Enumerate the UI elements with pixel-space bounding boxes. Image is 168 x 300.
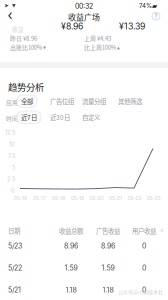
staticText: 昨日 ¥8.96 — [10, 34, 37, 42]
staticText: 应用 — [6, 98, 18, 106]
staticText: 10 — [9, 141, 15, 148]
staticText: 5 — [12, 164, 15, 171]
staticText: 广告位组 — [50, 96, 74, 106]
staticText: 1.59 — [101, 264, 114, 272]
staticText: 用户收益 — [132, 226, 156, 235]
staticText: 05-20 — [89, 195, 103, 201]
staticText: 日期 — [8, 226, 20, 235]
button[interactable]: 全部 — [17, 95, 37, 107]
staticText: 05-17 — [33, 195, 46, 201]
staticText: ▰ — [152, 2, 157, 10]
button[interactable]: 5/21 — [0, 279, 168, 300]
button[interactable]: 流量分组 — [78, 95, 110, 107]
button[interactable]: 其他筛选 — [114, 95, 146, 107]
staticText: 收益广场 — [68, 11, 100, 23]
staticText: 05-16 — [14, 195, 27, 201]
staticText: 收益 — [12, 25, 24, 33]
staticText: 0 — [11, 187, 15, 194]
staticText: 05-23 — [146, 195, 160, 201]
staticText: 0 — [142, 242, 146, 250]
staticText: 近7日 — [21, 112, 37, 122]
staticText: 12.5 — [5, 129, 15, 136]
staticText: 05-19 — [71, 195, 84, 201]
staticText: 近30日 — [50, 112, 70, 122]
staticText: 出账比100% ▾ — [10, 43, 46, 51]
staticText: 时间 — [6, 114, 18, 122]
staticText: 2.5 — [7, 176, 15, 183]
staticText: 上周 ¥4.43 — [84, 34, 111, 42]
staticText: ‹ — [160, 226, 163, 234]
staticText: 8.96 — [64, 242, 78, 250]
staticText: 收益总额 — [59, 226, 83, 235]
staticText: 05-21 — [109, 195, 122, 201]
staticText: ▾ — [12, 1, 16, 9]
staticText: 全部 — [21, 96, 33, 106]
staticText: 7.5 — [8, 153, 15, 159]
staticText: 趋势分析 — [8, 80, 44, 93]
staticText: 1.18 — [65, 286, 76, 294]
button[interactable]: Back — [4, 9, 16, 21]
staticText: 5/21 — [8, 286, 21, 294]
button[interactable]: 近30日 — [46, 111, 74, 123]
staticText: 其他筛选 — [118, 96, 142, 106]
button[interactable]: 广告位组 — [46, 95, 78, 107]
staticText: 74% — [139, 2, 152, 9]
staticText: ¥8.96 — [61, 21, 83, 31]
staticText: 1.18 — [102, 286, 113, 294]
staticText: ¥13.39 — [119, 21, 145, 31]
staticText: ➤ — [4, 2, 9, 9]
staticText: ? — [154, 12, 157, 20]
staticText: 比上周100% ▴ — [84, 43, 120, 51]
button[interactable]: 自定义 — [78, 111, 104, 123]
staticText: 1.59 — [64, 264, 77, 272]
button[interactable]: More columns — [158, 226, 166, 234]
staticText: 自定义 — [82, 112, 100, 122]
staticText: 5/22 — [8, 264, 22, 272]
staticText: 0 — [142, 286, 146, 294]
staticText: ‹ — [7, 7, 12, 23]
staticText: 5/23 — [8, 242, 22, 250]
staticText: 05-22 — [127, 195, 141, 201]
staticText: 0 — [142, 264, 146, 272]
staticText: 05-18 — [52, 195, 65, 201]
button[interactable]: 5/23 — [0, 235, 168, 257]
button[interactable]: Help — [152, 12, 160, 20]
button[interactable]: 5/22 — [0, 257, 168, 279]
staticText: 公众号@小鸡技术社 — [118, 288, 163, 295]
staticText: 广告收益 — [96, 226, 120, 235]
button[interactable]: 近7日 — [17, 111, 41, 123]
staticText: 8.96 — [101, 242, 115, 250]
staticText: 流量分组 — [82, 96, 106, 106]
staticText: 00:32 — [75, 2, 93, 10]
